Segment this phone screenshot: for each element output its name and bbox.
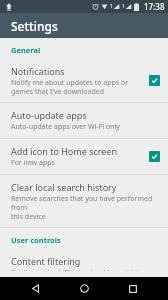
staticText: 17:38 (144, 1, 165, 12)
button[interactable]: Notifications (0, 59, 168, 103)
staticText: Add icon to Home screen (11, 145, 118, 157)
staticText: Clear local search history (11, 181, 117, 193)
staticText: Set the content filtering level to restr… (11, 268, 160, 271)
staticText: Remove searches that you have performed … (11, 194, 160, 221)
staticText: Auto-update apps over Wi-Fi only (11, 122, 120, 132)
staticText: Settings (11, 18, 58, 34)
staticText: Content filtering (11, 255, 81, 267)
button[interactable]: Recent apps (119, 277, 147, 300)
staticText: 1 (122, 3, 125, 10)
button[interactable]: Content filtering (0, 249, 168, 277)
button[interactable]: Toggle (149, 75, 160, 86)
staticText: Auto-update apps (11, 109, 87, 121)
staticText: General (11, 45, 41, 55)
staticText: Notifications (11, 65, 65, 77)
button[interactable]: Clear local search history (0, 175, 168, 228)
staticText: 1 (110, 3, 113, 10)
button[interactable]: Back (21, 277, 49, 300)
button[interactable]: Home (70, 277, 98, 300)
button[interactable]: Add icon to Home screen (0, 139, 168, 175)
button[interactable]: Auto-update apps (0, 103, 168, 139)
staticText: Notify me about updates to apps or games… (11, 78, 129, 96)
button[interactable]: Toggle (149, 151, 160, 162)
staticText: For new apps (11, 158, 55, 168)
staticText: User controls (11, 235, 61, 245)
